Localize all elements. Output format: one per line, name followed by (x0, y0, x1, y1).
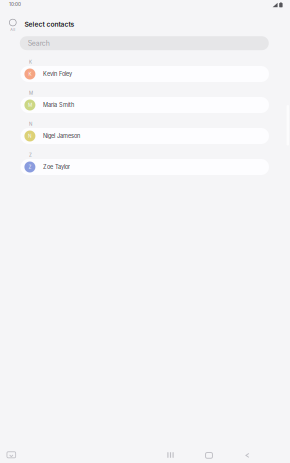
button[interactable]: Back (233, 447, 261, 463)
staticText: K (28, 71, 31, 77)
staticText: Nigel Jameson (43, 133, 80, 139)
button[interactable]: M (20, 97, 269, 113)
staticText: N (29, 121, 32, 127)
staticText: N (28, 133, 32, 139)
button[interactable]: K (20, 66, 269, 82)
staticText: All (10, 27, 15, 32)
button[interactable]: Hide keyboard (0, 447, 24, 463)
button[interactable]: N (20, 128, 269, 144)
button[interactable]: Select all (2, 18, 24, 32)
staticText: K (29, 59, 32, 65)
staticText: Maria Smith (43, 102, 74, 108)
staticText: Z (28, 164, 31, 170)
button[interactable]: Search (20, 36, 269, 50)
staticText: Z (29, 152, 32, 158)
staticText: Search (28, 39, 50, 47)
button[interactable]: Recent apps (156, 447, 184, 463)
staticText: Kevin Foley (43, 71, 72, 77)
staticText: 10:00 (9, 1, 21, 7)
button[interactable]: Home (195, 447, 223, 463)
staticText: M (29, 90, 33, 96)
staticText: M (28, 102, 32, 108)
button[interactable]: Z (20, 159, 269, 175)
staticText: Select contacts (24, 20, 74, 28)
staticText: Zoe Taylor (43, 164, 70, 170)
